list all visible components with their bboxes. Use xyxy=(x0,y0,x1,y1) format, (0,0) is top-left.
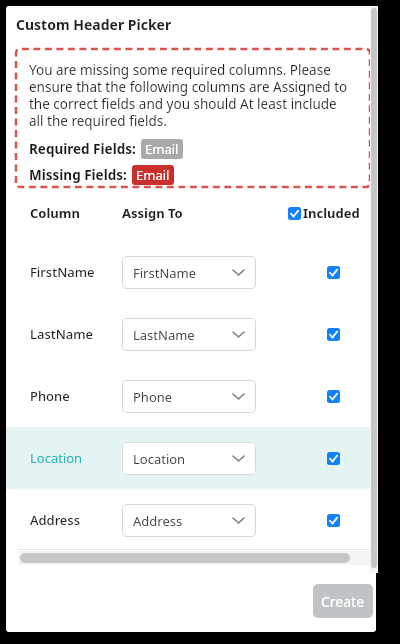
button[interactable]: Phone xyxy=(122,380,256,413)
staticText: FirstName xyxy=(30,263,95,281)
button[interactable]: FirstName xyxy=(122,256,256,289)
staticText: Assign To xyxy=(122,204,183,222)
staticText: Phone xyxy=(30,387,70,405)
staticText: LastName xyxy=(30,325,93,343)
button[interactable]: Included xyxy=(288,204,360,222)
button[interactable]: Location xyxy=(122,442,256,475)
staticText: Location xyxy=(30,449,83,467)
button[interactable]: Include Location xyxy=(322,447,344,469)
button[interactable]: LastName xyxy=(6,303,370,365)
button[interactable]: Location xyxy=(6,427,370,489)
button[interactable]: Include Phone xyxy=(322,385,344,407)
staticText: Location xyxy=(133,450,186,468)
button[interactable]: Phone xyxy=(6,365,370,427)
staticText: Address xyxy=(30,511,80,529)
staticText: Email xyxy=(145,140,179,158)
staticText: Required Fields: xyxy=(29,140,136,158)
button[interactable]: Include LastName xyxy=(322,323,344,345)
button[interactable]: Create xyxy=(313,584,373,618)
staticText: Create xyxy=(321,592,365,611)
staticText: Included xyxy=(303,204,360,222)
staticText: Phone xyxy=(133,388,173,406)
button[interactable]: Address xyxy=(122,504,256,537)
staticText: You are missing some required columns. P… xyxy=(29,61,354,130)
button[interactable]: Address xyxy=(6,489,370,551)
staticText: Column xyxy=(30,204,80,222)
staticText: LastName xyxy=(133,326,195,344)
button[interactable]: LastName xyxy=(122,318,256,351)
staticText: FirstName xyxy=(133,264,197,282)
staticText: Email xyxy=(136,166,170,184)
staticText: Custom Header Picker xyxy=(16,15,172,34)
button[interactable]: FirstName xyxy=(6,241,370,303)
staticText: Missing Fields: xyxy=(29,166,127,184)
button[interactable]: Include FirstName xyxy=(322,261,344,283)
staticText: Address xyxy=(133,512,183,530)
button[interactable]: Include Address xyxy=(322,509,344,531)
